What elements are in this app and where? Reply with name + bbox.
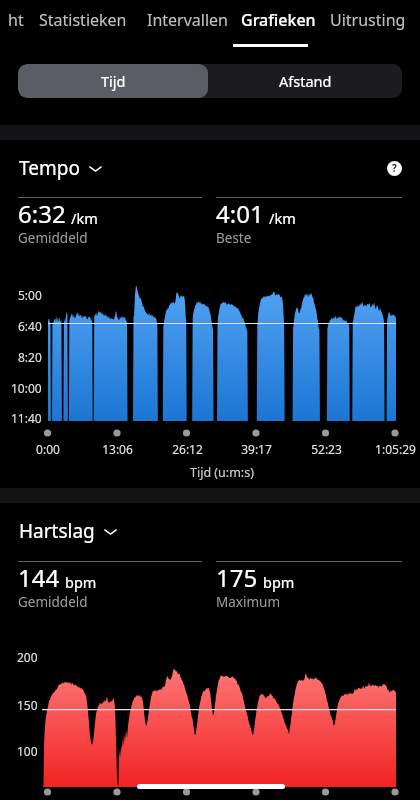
staticText: 175 [216, 561, 258, 594]
staticText: 11:40 [11, 410, 42, 426]
button[interactable]: Tijd [18, 64, 208, 98]
staticText: /km [71, 208, 98, 228]
staticText: Intervallen [147, 9, 228, 31]
staticText: Hartslag [19, 518, 95, 544]
staticText: 6:32 [18, 197, 66, 230]
staticText: 52:23 [311, 441, 342, 457]
staticText: 26:12 [172, 441, 203, 457]
staticText: Tijd [101, 71, 126, 91]
staticText: 144 [18, 561, 60, 594]
staticText: Grafieken [241, 9, 316, 31]
staticText: 0:00 [36, 441, 60, 457]
staticText: 200 [17, 649, 38, 665]
staticText: ? [392, 161, 397, 175]
staticText: bpm [65, 572, 97, 592]
staticText: 1:05:29 [375, 441, 416, 457]
staticText: Tijd (u:m:s) [190, 464, 254, 481]
staticText: Gemiddeld [18, 593, 88, 611]
staticText: ht [8, 9, 24, 31]
button[interactable]: Statistieken [39, 0, 127, 42]
staticText: Afstand [279, 71, 332, 91]
button[interactable]: Uitrusting [330, 0, 406, 42]
staticText: Uitrusting [330, 9, 406, 31]
button[interactable]: Tempo [19, 153, 102, 183]
staticText: 150 [17, 697, 38, 713]
button[interactable]: Afstand [208, 64, 402, 98]
button[interactable]: Help [382, 156, 406, 180]
staticText: 4:01 [216, 197, 264, 230]
staticText: 100 [17, 743, 38, 759]
staticText: Beste [216, 229, 252, 247]
staticText: 5:00 [18, 287, 42, 303]
staticText: Gemiddeld [18, 229, 88, 247]
staticText: Statistieken [39, 9, 127, 31]
staticText: Maximum [216, 593, 281, 611]
staticText: 6:40 [18, 318, 42, 334]
staticText: /km [269, 208, 296, 228]
staticText: 10:00 [11, 380, 42, 396]
staticText: Tempo [19, 155, 80, 181]
button[interactable]: Hartslag [19, 516, 117, 546]
staticText: 13:06 [102, 441, 133, 457]
button[interactable]: Intervallen [147, 0, 228, 42]
staticText: 8:20 [18, 349, 42, 365]
staticText: bpm [263, 572, 295, 592]
button[interactable]: ht [8, 0, 24, 42]
button[interactable]: Grafieken [241, 0, 316, 42]
staticText: 39:17 [241, 441, 272, 457]
